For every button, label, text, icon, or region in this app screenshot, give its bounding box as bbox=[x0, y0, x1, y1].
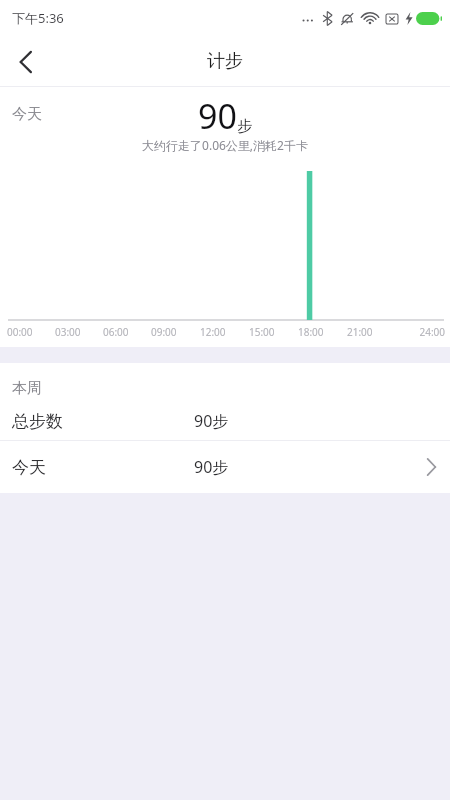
staticText: 步 bbox=[237, 117, 252, 136]
staticText: 90步 bbox=[194, 410, 229, 432]
staticText: 今天 bbox=[12, 457, 46, 478]
staticText: 15:00 bbox=[249, 325, 298, 339]
button[interactable]: 今天 bbox=[0, 441, 450, 493]
staticText: 06:00 bbox=[103, 325, 151, 339]
staticText: 计步 bbox=[207, 50, 243, 73]
staticText: 24:00 bbox=[396, 325, 445, 339]
staticText: 90 bbox=[198, 93, 237, 139]
button[interactable]: 总步数 bbox=[0, 402, 450, 440]
staticText: 总步数 bbox=[12, 411, 63, 432]
button[interactable]: Back bbox=[0, 36, 52, 87]
staticText: 12:00 bbox=[200, 325, 249, 339]
staticText: 09:00 bbox=[151, 325, 200, 339]
staticText: 下午5:36 bbox=[12, 9, 64, 27]
staticText: 大约行走了0.06公里,消耗2千卡 bbox=[142, 137, 308, 153]
staticText: 03:00 bbox=[55, 325, 103, 339]
staticText: 18:00 bbox=[298, 325, 347, 339]
staticText: 今天 bbox=[12, 105, 42, 124]
staticText: 本周 bbox=[12, 379, 42, 398]
staticText: 00:00 bbox=[7, 325, 55, 339]
staticText: 21:00 bbox=[347, 325, 396, 339]
staticText: 90步 bbox=[194, 456, 229, 478]
